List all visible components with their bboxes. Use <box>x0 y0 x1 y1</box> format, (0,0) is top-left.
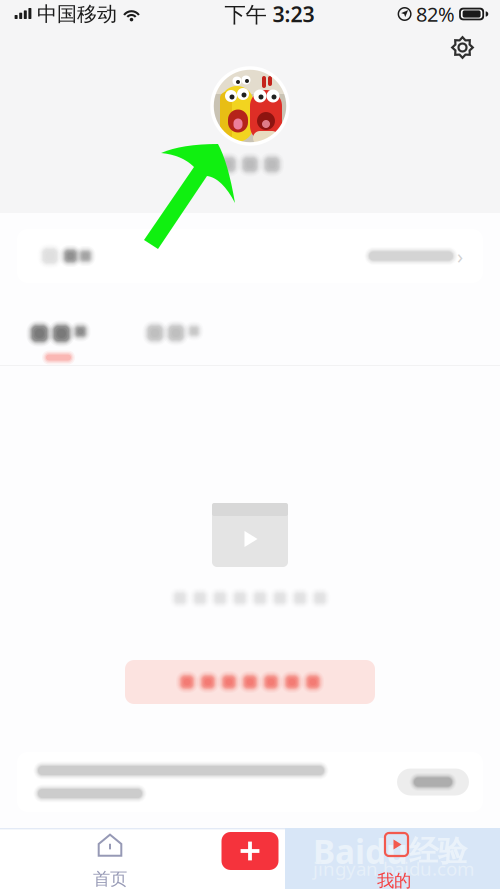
staticText: 82% <box>416 1 455 27</box>
staticText: 下午 3:23 <box>225 0 315 28</box>
staticText: jingyan.baidu.com <box>313 856 474 881</box>
button[interactable]: 我的 <box>320 828 460 889</box>
staticText: 首页 <box>93 868 127 889</box>
button[interactable]: › <box>17 229 483 283</box>
staticText: › <box>457 243 463 269</box>
button[interactable] <box>26 320 91 365</box>
button[interactable]: Settings <box>444 29 481 66</box>
staticText: 中国移动 <box>37 2 117 26</box>
button[interactable]: 首页 <box>40 828 180 889</box>
button[interactable] <box>397 768 469 795</box>
staticText: 经验 <box>409 833 467 869</box>
staticText: 我的 <box>373 868 407 889</box>
button[interactable] <box>142 320 204 346</box>
staticText: Baidu <box>313 829 408 873</box>
staticText: 我的 <box>377 870 411 889</box>
button[interactable]: Create <box>180 828 320 889</box>
button[interactable] <box>125 660 375 704</box>
